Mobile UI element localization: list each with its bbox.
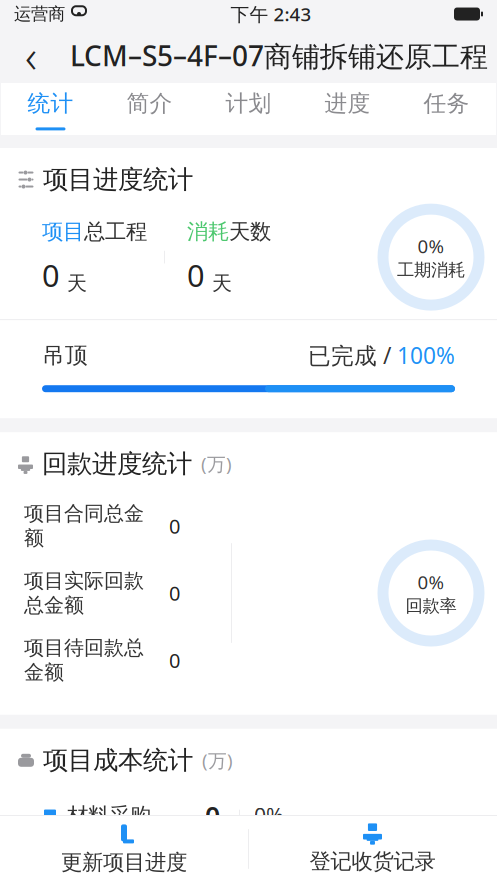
button[interactable]: 登记收货记录 bbox=[248, 815, 497, 883]
staticText: 项目待回款总金额 bbox=[24, 636, 144, 685]
staticText: 进度 bbox=[324, 90, 370, 117]
staticText: 0 bbox=[169, 647, 180, 673]
staticText: 100% bbox=[397, 340, 455, 370]
staticText: 回款率 bbox=[405, 595, 456, 617]
staticText: 计划 bbox=[225, 90, 271, 117]
staticText: 材料采购 bbox=[67, 802, 151, 829]
staticText: 0% bbox=[254, 801, 284, 830]
staticText: 已完成 / bbox=[308, 340, 397, 370]
staticText: 0 bbox=[169, 513, 180, 539]
staticText: 0 bbox=[42, 255, 60, 296]
button[interactable]: 简介 bbox=[100, 83, 199, 135]
staticText: 项目 bbox=[42, 219, 84, 245]
staticText: 0% bbox=[417, 234, 444, 258]
staticText: 项目合同总金额 bbox=[24, 501, 144, 550]
staticText: 0 bbox=[169, 580, 180, 606]
staticText: 天 bbox=[212, 271, 232, 296]
staticText: 吊顶 bbox=[42, 341, 88, 369]
staticText: 0 bbox=[205, 798, 220, 833]
staticText: 下午 2:43 bbox=[230, 2, 311, 26]
staticText: 统计 bbox=[27, 90, 73, 117]
staticText: 登记收货记录 bbox=[309, 848, 435, 875]
button[interactable]: 计划 bbox=[199, 83, 298, 135]
staticText: (万) bbox=[202, 748, 233, 773]
staticText: 总工程 bbox=[84, 219, 147, 245]
staticText: LCM–S5–4F–07商铺拆铺还原工程 bbox=[70, 37, 488, 74]
button[interactable]: 更新项目进度 bbox=[0, 815, 248, 883]
staticText: 任务 bbox=[423, 90, 469, 117]
staticText: (万) bbox=[201, 451, 232, 476]
staticText: ‹ bbox=[25, 25, 37, 86]
button[interactable]: Back bbox=[8, 28, 54, 82]
staticText: 0% bbox=[417, 569, 444, 594]
staticText: 消耗 bbox=[187, 219, 229, 245]
staticText: 天 bbox=[67, 271, 87, 296]
staticText: 项目进度统计 bbox=[43, 164, 193, 195]
staticText: 劳务 bbox=[67, 862, 109, 883]
staticText: 回款进度统计 bbox=[42, 448, 192, 479]
staticText: 简介 bbox=[126, 90, 172, 117]
button[interactable]: 任务 bbox=[397, 83, 496, 135]
staticText: 0 bbox=[187, 255, 205, 296]
staticText: 项目成本统计 bbox=[43, 745, 193, 776]
staticText: 工期消耗 bbox=[397, 259, 465, 281]
button[interactable]: 进度 bbox=[298, 83, 397, 135]
staticText: 项目实际回款总金额 bbox=[24, 568, 144, 618]
button[interactable]: 统计 bbox=[1, 83, 100, 135]
staticText: 运营商 bbox=[14, 3, 65, 25]
staticText: 更新项目进度 bbox=[61, 849, 187, 876]
staticText: 天数 bbox=[229, 219, 271, 245]
